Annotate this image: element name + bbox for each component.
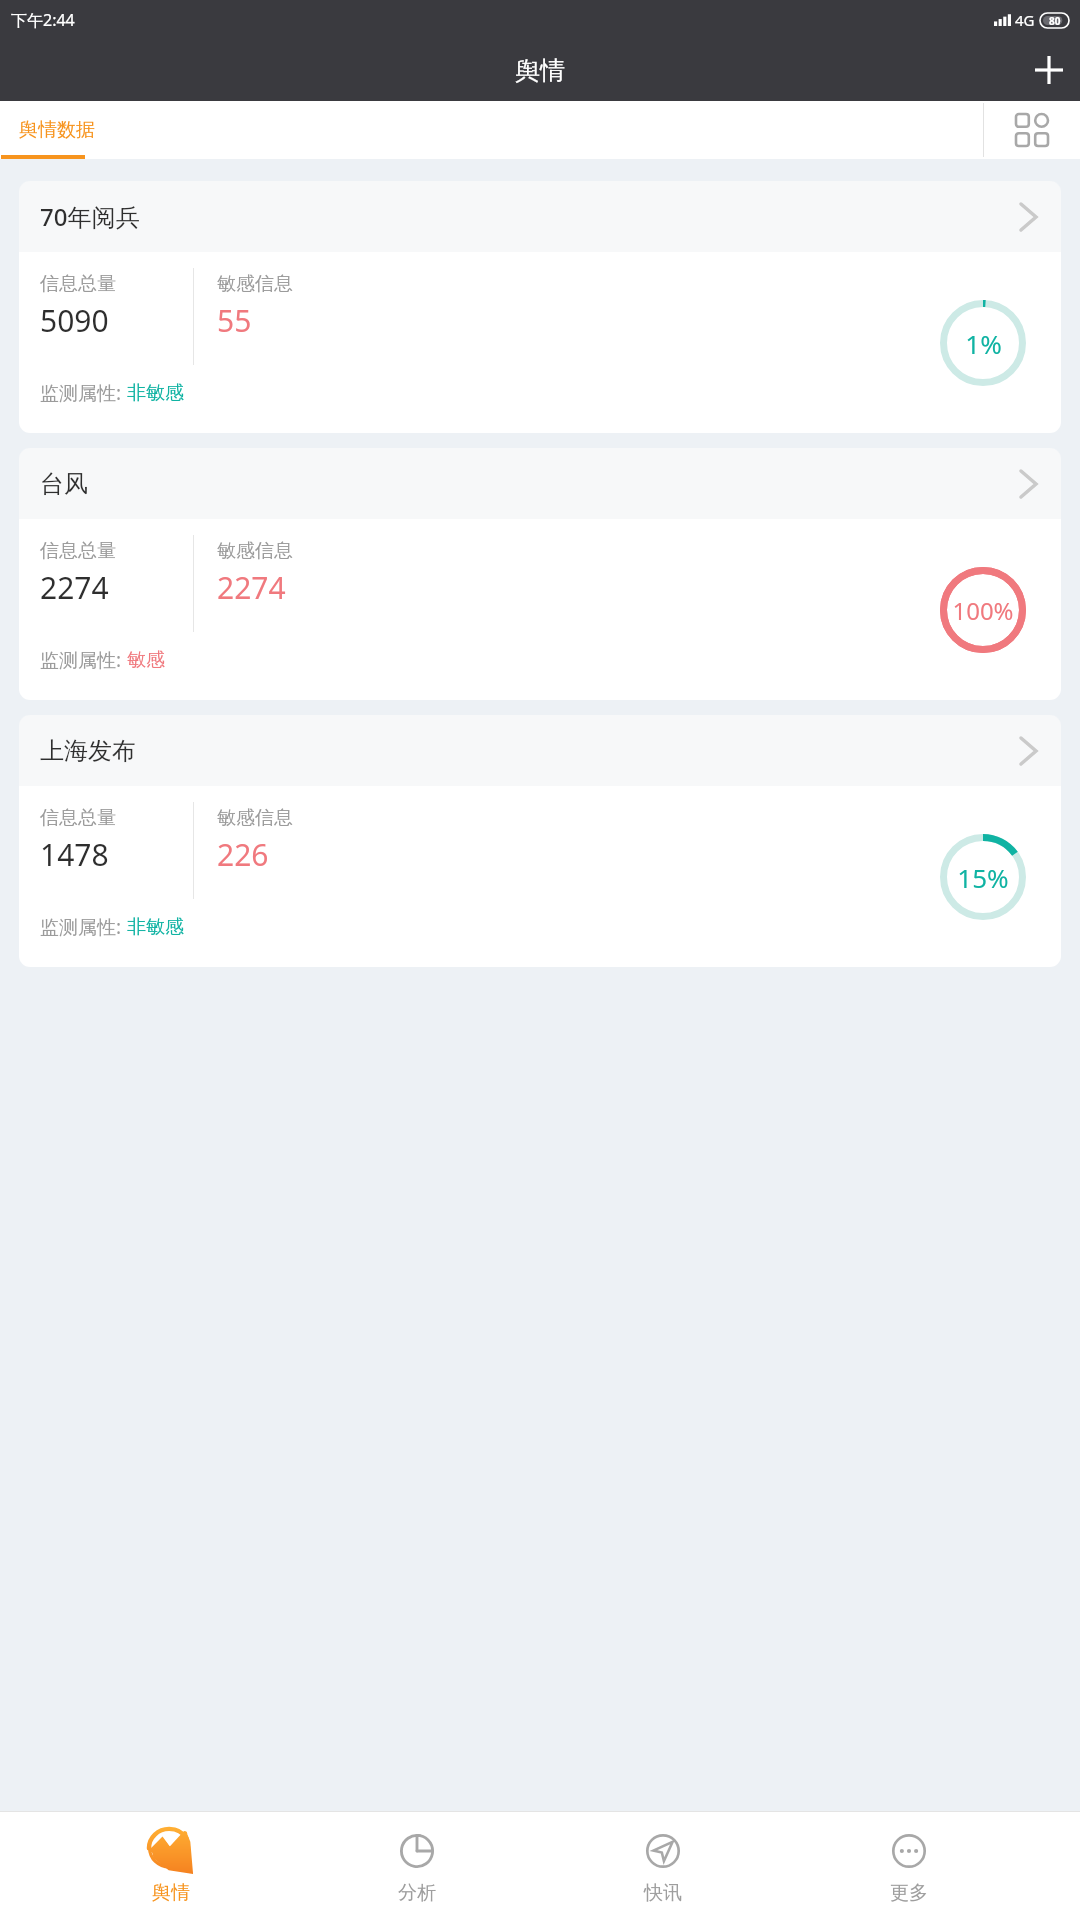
staticText: 更多 — [890, 1881, 928, 1905]
button[interactable]: 台风 — [19, 448, 1061, 700]
button[interactable]: 分析 — [342, 1812, 492, 1920]
staticText: 监测属性: — [40, 647, 127, 673]
staticText: 70年阅兵 — [40, 200, 140, 233]
staticText: 舆情 — [515, 55, 565, 86]
staticText: 1% — [965, 326, 1002, 361]
staticText: 敏感信息 — [217, 272, 293, 296]
staticText: 监测属性: — [40, 380, 127, 406]
staticText: 1478 — [40, 834, 109, 875]
staticText: 分析 — [398, 1881, 436, 1905]
staticText: 2274 — [40, 567, 109, 608]
staticText: 信息总量 — [40, 539, 116, 563]
staticText: 5090 — [40, 300, 109, 341]
button[interactable]: 更多 — [834, 1812, 984, 1920]
button[interactable]: 70年阅兵 — [19, 181, 1061, 433]
staticText: 舆情 — [152, 1881, 190, 1905]
staticText: 快讯 — [644, 1881, 682, 1905]
staticText: 台风 — [40, 469, 88, 499]
staticText: 信息总量 — [40, 272, 116, 296]
staticText: 敏感信息 — [217, 806, 293, 830]
button[interactable]: 上海发布 — [19, 715, 1061, 967]
staticText: 监测属性: — [40, 914, 127, 940]
staticText: 2274 — [217, 567, 286, 608]
staticText: 上海发布 — [40, 736, 136, 766]
staticText: 55 — [217, 300, 252, 341]
staticText: 舆情数据 — [19, 118, 95, 142]
staticText: 15% — [957, 860, 1009, 895]
staticText: 下午2:44 — [11, 9, 75, 31]
staticText: 4G — [1015, 10, 1035, 30]
staticText: 敏感 — [127, 648, 165, 672]
staticText: 非敏感 — [127, 915, 184, 939]
button[interactable]: 舆情数据 — [0, 101, 983, 159]
button[interactable]: Grid view — [984, 101, 1080, 159]
button[interactable]: 舆情 — [96, 1812, 246, 1920]
button[interactable]: Add — [1018, 39, 1080, 101]
staticText: 信息总量 — [40, 806, 116, 830]
staticText: 非敏感 — [127, 381, 184, 405]
staticText: 226 — [217, 834, 269, 875]
staticText: 80 — [1049, 14, 1061, 28]
button[interactable]: 快讯 — [588, 1812, 738, 1920]
staticText: 100% — [952, 594, 1014, 627]
staticText: 敏感信息 — [217, 539, 293, 563]
